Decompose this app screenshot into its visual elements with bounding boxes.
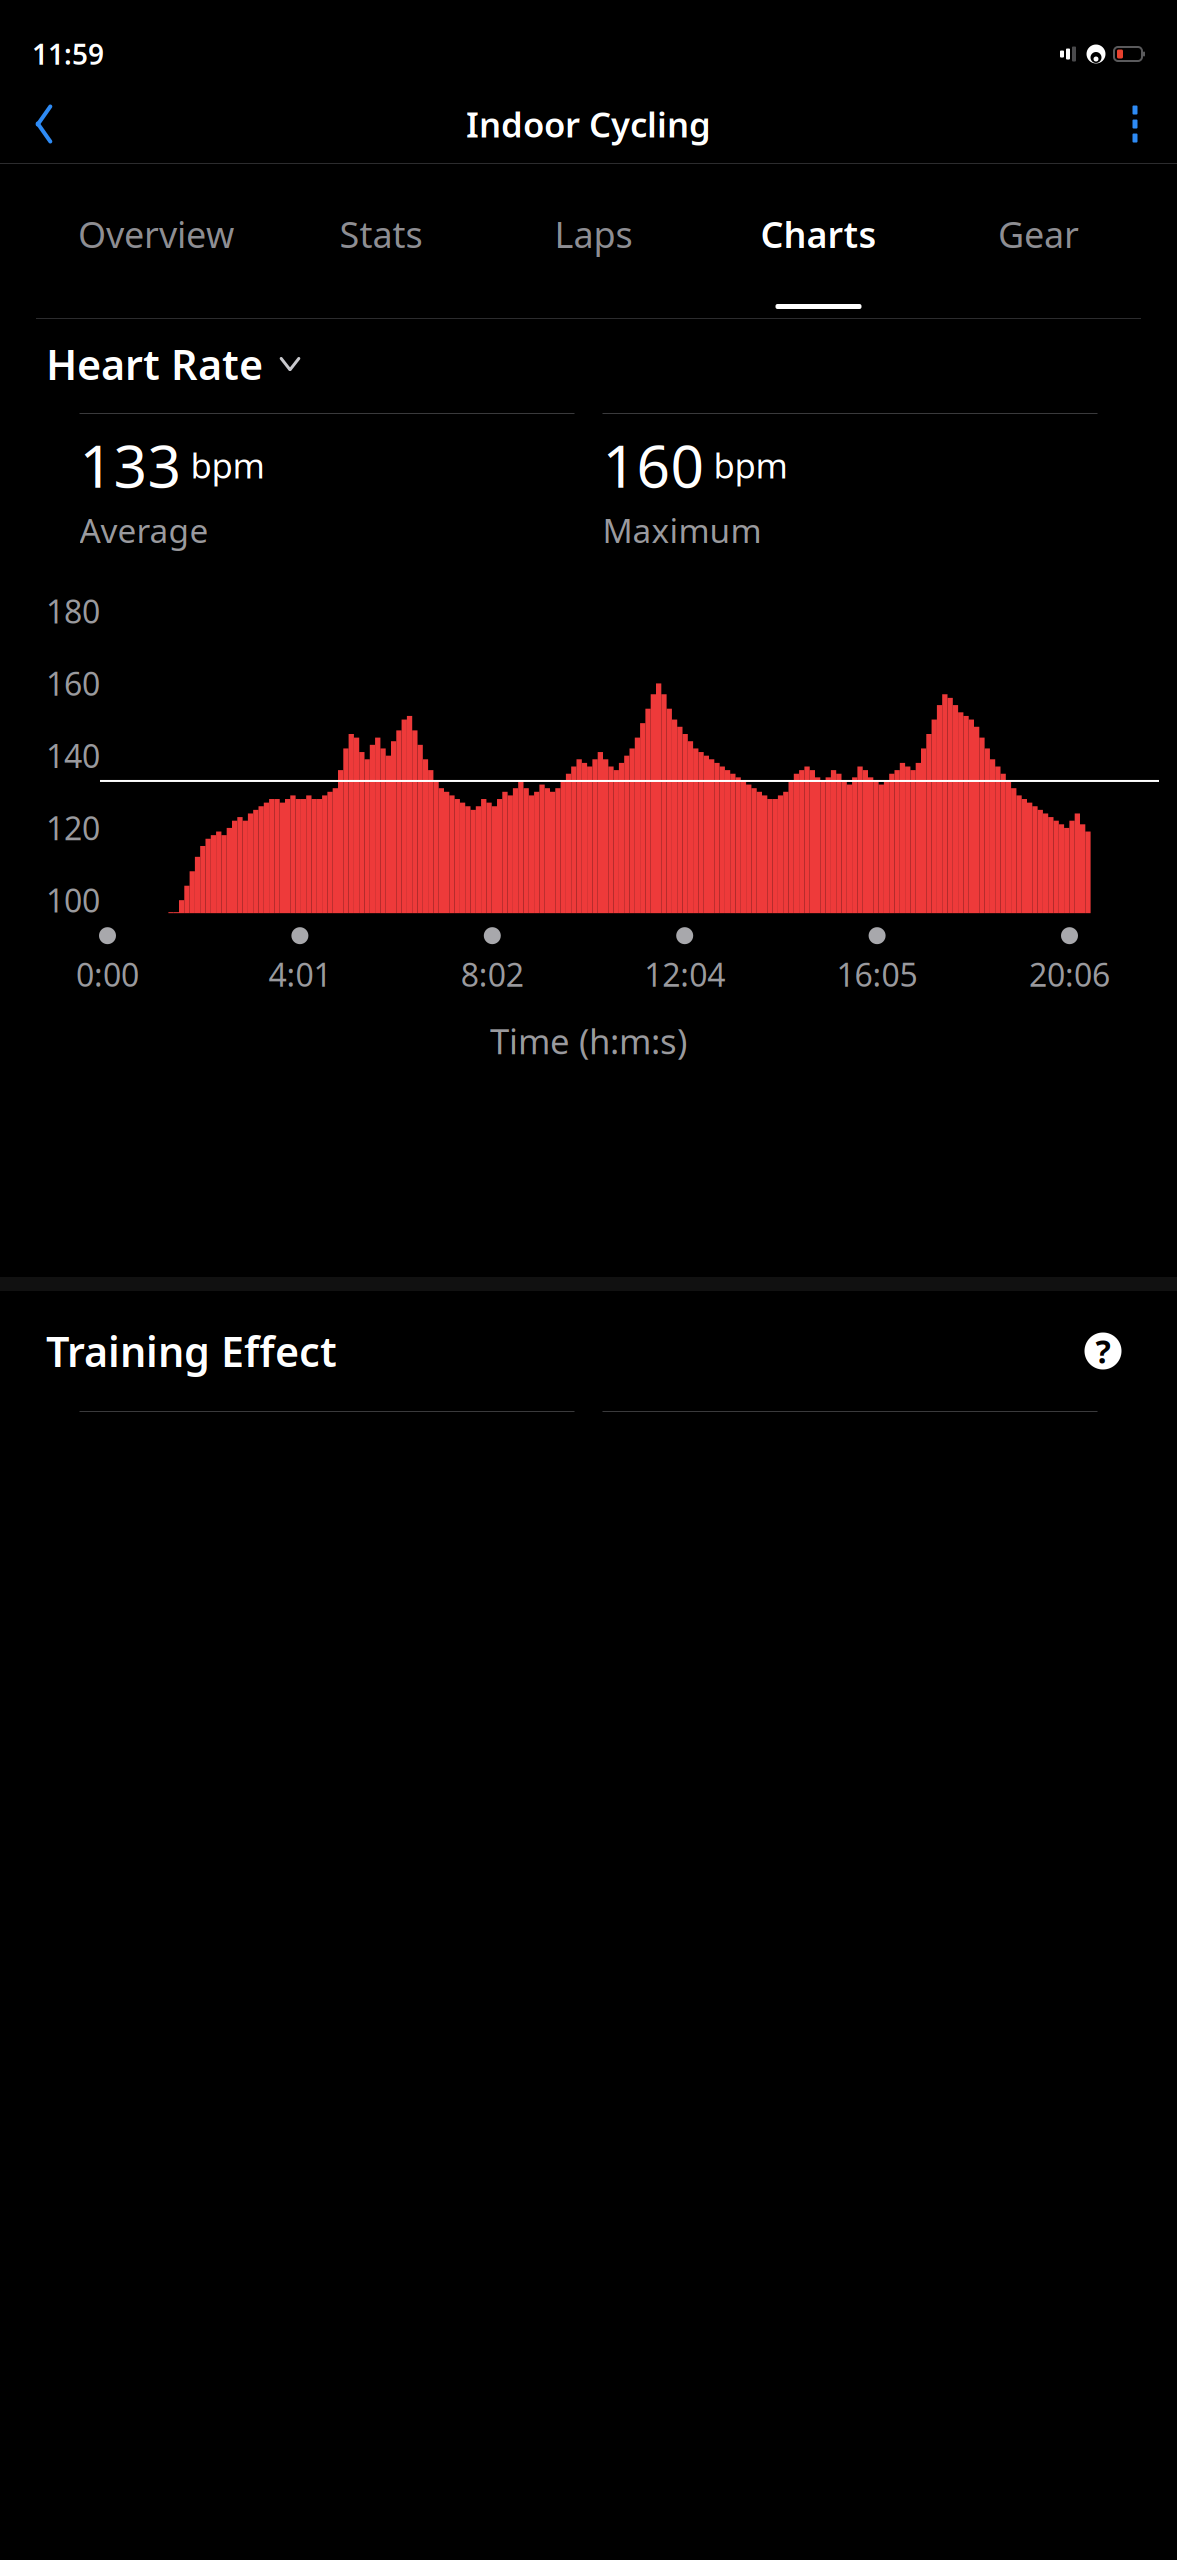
staticText: 140: [46, 734, 100, 777]
staticText: 11:59: [32, 35, 104, 73]
button[interactable]: Charts: [701, 164, 936, 319]
staticText: bpm: [190, 442, 264, 488]
staticText: Indoor Cycling: [466, 101, 711, 147]
staticText: 120: [46, 807, 100, 849]
staticText: 160: [46, 662, 100, 705]
staticText: 133: [79, 426, 181, 504]
button[interactable]: Gear: [936, 164, 1141, 319]
staticText: Laps: [554, 210, 632, 258]
button[interactable]: More options: [1107, 96, 1163, 152]
staticText: 180: [46, 590, 100, 632]
button[interactable]: Overview: [36, 164, 276, 319]
staticText: 0:00: [76, 953, 139, 996]
staticText: Overview: [78, 210, 234, 258]
button[interactable]: Back: [14, 96, 74, 152]
staticText: Training Effect: [46, 1324, 337, 1378]
staticText: 12:04: [644, 953, 725, 996]
staticText: Average: [79, 508, 208, 552]
staticText: Stats: [339, 210, 422, 258]
staticText: Gear: [998, 210, 1079, 258]
staticText: 160: [602, 426, 704, 504]
staticText: 20:06: [1029, 953, 1110, 996]
staticText: 4:01: [268, 953, 331, 996]
button[interactable]: Laps: [486, 164, 701, 319]
staticText: Charts: [760, 210, 876, 258]
staticText: ?: [1095, 1330, 1110, 1372]
button[interactable]: Stats: [276, 164, 486, 319]
staticText: Maximum: [602, 508, 761, 552]
staticText: Time (h:m:s): [490, 1018, 687, 1064]
staticText: Heart Rate: [46, 337, 263, 391]
staticText: 100: [46, 879, 100, 921]
staticText: 16:05: [837, 953, 918, 996]
button[interactable]: Heart Rate: [0, 319, 1177, 409]
staticText: bpm: [713, 442, 787, 488]
button[interactable]: Help about Training Effect: [1075, 1323, 1131, 1379]
staticText: 8:02: [461, 953, 524, 996]
